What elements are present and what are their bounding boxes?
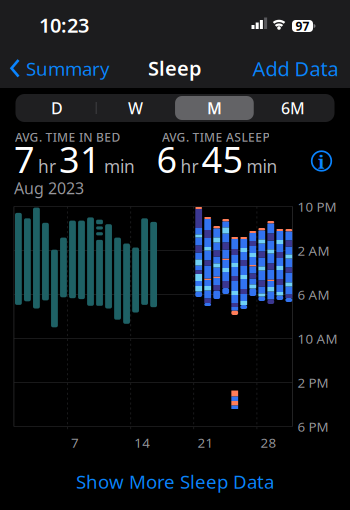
staticText: D	[51, 97, 63, 119]
button[interactable]: About Sleep	[310, 150, 332, 172]
button[interactable]: Summary	[10, 56, 130, 81]
staticText: hr	[38, 155, 56, 178]
staticText: hr	[180, 155, 198, 178]
staticText: 6M	[281, 97, 305, 119]
staticText: 10 PM	[297, 198, 336, 215]
button[interactable]: 6M	[254, 94, 332, 122]
staticText: 10:23	[39, 12, 89, 38]
button[interactable]: Show More Sleep Data	[76, 469, 274, 494]
staticText: Sleep	[148, 55, 202, 81]
staticText: 10 AM	[297, 330, 337, 347]
staticText: i	[318, 149, 325, 174]
staticText: 45	[201, 135, 243, 183]
staticText: M	[207, 97, 222, 119]
staticText: 7	[14, 135, 35, 183]
staticText: W	[128, 97, 143, 119]
staticText: 31	[59, 135, 101, 183]
staticText: Aug 2023	[14, 177, 84, 199]
staticText: AVG. TIME ASLEEP	[162, 129, 269, 145]
button[interactable]: W	[97, 94, 175, 122]
staticText: 2 PM	[297, 374, 328, 391]
staticText: Show More Sleep Data	[76, 469, 274, 494]
staticText: AVG. TIME IN BED	[15, 129, 120, 145]
staticText: 6 AM	[297, 286, 329, 303]
staticText: Summary	[26, 56, 110, 81]
staticText: 21	[197, 434, 213, 451]
staticText: 7	[71, 434, 79, 451]
staticText: 97	[295, 18, 309, 34]
staticText: Add Data	[252, 55, 338, 82]
staticText: min	[104, 155, 135, 178]
staticText: 6 PM	[297, 418, 328, 435]
button[interactable]: Add Data	[228, 55, 338, 82]
button[interactable]: M	[175, 94, 253, 122]
staticText: min	[246, 155, 277, 178]
button[interactable]: D	[18, 94, 96, 122]
staticText: 28	[261, 434, 277, 451]
staticText: 2 AM	[297, 242, 329, 259]
staticText: 14	[134, 434, 150, 451]
staticText: 6	[156, 135, 177, 183]
